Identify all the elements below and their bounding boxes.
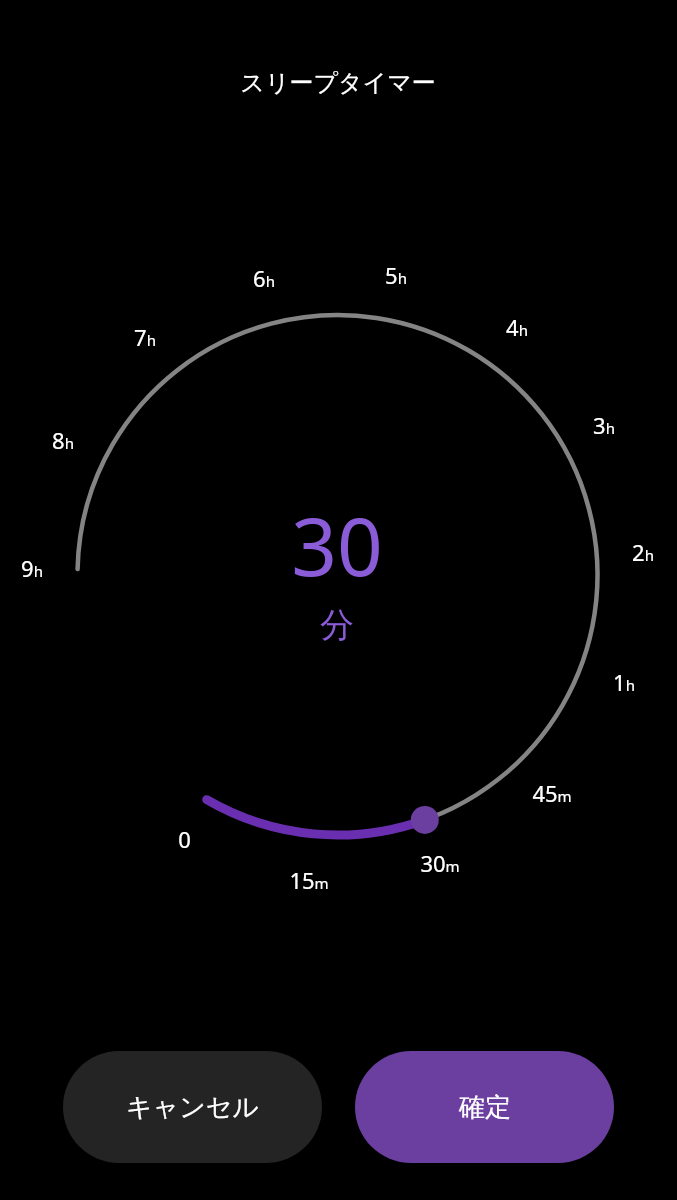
staticText: 2h bbox=[632, 537, 654, 567]
staticText: キャンセル bbox=[126, 1091, 260, 1124]
staticText: スリープタイマー bbox=[240, 68, 436, 98]
staticText: 3h bbox=[593, 410, 615, 440]
button[interactable]: キャンセル bbox=[63, 1051, 322, 1163]
staticText: 確定 bbox=[459, 1091, 511, 1124]
staticText: 30m bbox=[420, 848, 460, 878]
staticText: 1h bbox=[613, 667, 635, 697]
staticText: 9h bbox=[21, 553, 43, 583]
staticText: 7h bbox=[134, 322, 156, 352]
staticText: 30 bbox=[291, 490, 383, 590]
staticText: 6h bbox=[253, 263, 275, 293]
staticText: 8h bbox=[52, 425, 74, 455]
staticText: 45m bbox=[532, 778, 572, 808]
staticText: 0 bbox=[178, 824, 191, 854]
staticText: 4h bbox=[506, 312, 528, 342]
staticText: 分 bbox=[320, 604, 354, 647]
button[interactable]: 確定 bbox=[355, 1051, 614, 1163]
staticText: 15m bbox=[289, 865, 329, 895]
staticText: 5h bbox=[385, 260, 407, 290]
